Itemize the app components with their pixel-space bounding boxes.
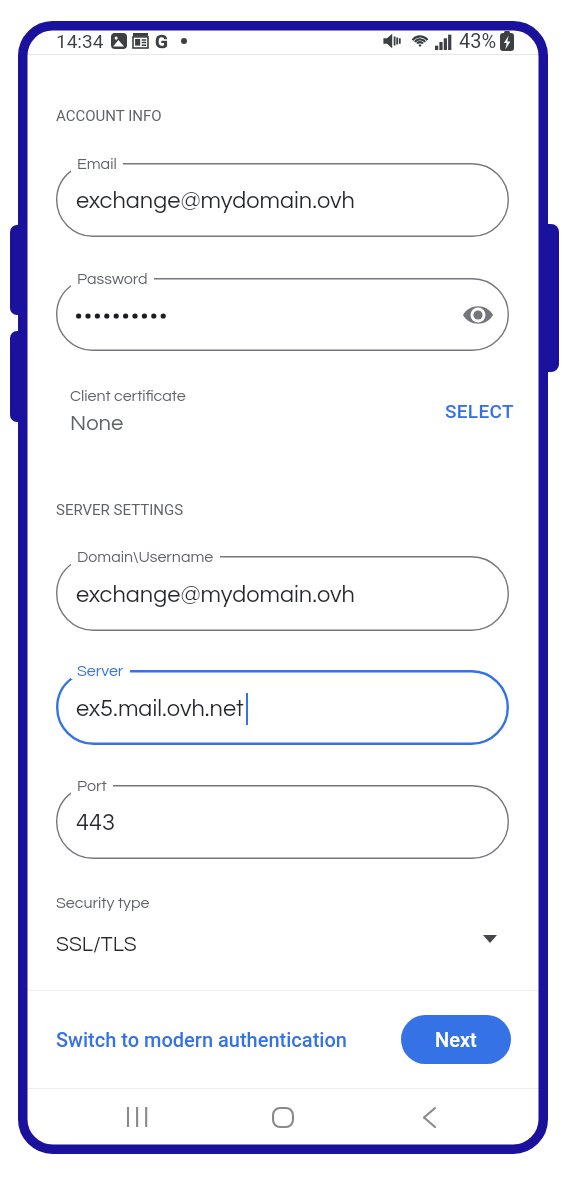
staticText: Domain\Username [77, 549, 214, 565]
staticText: exchange@mydomain.ovh [76, 583, 355, 607]
staticText: SERVER SETTINGS [56, 501, 184, 519]
button[interactable]: Home [247, 1095, 319, 1139]
staticText: ex5.mail.ovh.net [76, 697, 244, 721]
button[interactable]: Next [401, 1015, 511, 1064]
staticText: Email [77, 156, 117, 172]
button[interactable]: Client certificate [56, 382, 386, 468]
staticText: SSL/TLS [56, 934, 137, 956]
staticText: SELECT [445, 400, 514, 422]
button[interactable]: Password [56, 278, 509, 351]
button[interactable]: Back [393, 1095, 465, 1139]
staticText: Server [77, 663, 124, 679]
button[interactable]: Show password [460, 297, 496, 333]
staticText: Security type [56, 895, 150, 911]
staticText: Port [77, 778, 107, 794]
button[interactable]: Domain\Username [56, 556, 509, 631]
staticText: None [70, 412, 124, 435]
staticText: Client certificate [70, 388, 186, 404]
staticText: exchange@mydomain.ovh [76, 189, 355, 213]
staticText: Password [77, 271, 148, 287]
button[interactable]: Port [56, 785, 509, 859]
button[interactable]: Security type [27, 893, 539, 983]
button[interactable]: Server [56, 670, 509, 745]
staticText: Next [435, 1028, 477, 1051]
button[interactable]: Switch to modern authentication [52, 1020, 351, 1059]
staticText: 14:34 [56, 30, 104, 52]
staticText: 443 [76, 811, 115, 835]
staticText: Switch to modern authentication [56, 1028, 347, 1051]
staticText: 43% [459, 29, 497, 52]
button[interactable]: Recent apps [101, 1095, 173, 1139]
button[interactable]: SELECT [440, 394, 519, 428]
button[interactable]: Email [56, 163, 509, 237]
staticText: ACCOUNT INFO [56, 107, 162, 125]
staticText: G [155, 30, 168, 52]
